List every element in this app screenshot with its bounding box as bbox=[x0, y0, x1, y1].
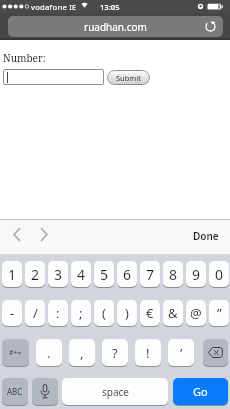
button[interactable]: ” bbox=[209, 300, 229, 326]
staticText: € bbox=[146, 304, 154, 322]
button[interactable]: Done bbox=[188, 225, 224, 247]
staticText: 8 bbox=[169, 265, 178, 284]
staticText: 6 bbox=[123, 265, 132, 284]
button[interactable]: - bbox=[2, 300, 22, 326]
button[interactable]: : bbox=[48, 300, 68, 326]
staticText: ruadhan.com bbox=[84, 20, 147, 34]
staticText: 0 bbox=[215, 265, 224, 284]
staticText: ) bbox=[125, 304, 129, 322]
button[interactable]: Go bbox=[173, 378, 228, 405]
staticText: & bbox=[168, 304, 178, 322]
button[interactable]: 6 bbox=[117, 261, 137, 287]
staticText: ? bbox=[112, 344, 118, 362]
staticText: 4 bbox=[77, 265, 86, 284]
button[interactable]: , bbox=[69, 339, 95, 366]
staticText: #+= bbox=[9, 348, 22, 358]
button[interactable]: ? bbox=[102, 339, 128, 366]
staticText: ( bbox=[102, 304, 106, 322]
staticText: 2 bbox=[31, 265, 40, 284]
button[interactable]: / bbox=[25, 300, 45, 326]
button[interactable] bbox=[13, 228, 21, 241]
button[interactable]: ABC bbox=[2, 378, 28, 405]
staticText: @ bbox=[190, 304, 202, 322]
button[interactable]: € bbox=[140, 300, 160, 326]
button[interactable]: @ bbox=[186, 300, 206, 326]
staticText: space bbox=[102, 385, 129, 399]
button[interactable]: 9 bbox=[186, 261, 206, 287]
button[interactable]: 1 bbox=[2, 261, 22, 287]
button[interactable]: 4 bbox=[71, 261, 91, 287]
staticText: , bbox=[80, 344, 84, 362]
button[interactable]: 2 bbox=[25, 261, 45, 287]
staticText: vodafone IE bbox=[31, 2, 77, 12]
button[interactable]: #+= bbox=[2, 339, 29, 366]
button[interactable]: 8 bbox=[163, 261, 183, 287]
staticText: 5 bbox=[100, 265, 109, 284]
button[interactable]: 3 bbox=[48, 261, 68, 287]
staticText: : bbox=[56, 304, 60, 322]
button[interactable] bbox=[203, 339, 228, 366]
button[interactable]: . bbox=[36, 339, 62, 366]
button[interactable]: ; bbox=[71, 300, 91, 326]
button[interactable]: 5 bbox=[94, 261, 114, 287]
staticText: - bbox=[10, 304, 15, 322]
staticText: ’ bbox=[180, 344, 183, 362]
staticText: Done bbox=[193, 229, 219, 243]
button[interactable]: ruadhan.com bbox=[8, 16, 223, 37]
staticText: Number: bbox=[3, 51, 46, 65]
button[interactable] bbox=[3, 69, 104, 85]
button[interactable]: ( bbox=[94, 300, 114, 326]
staticText: Submit bbox=[116, 73, 142, 83]
button[interactable] bbox=[205, 21, 216, 32]
staticText: 3 bbox=[54, 265, 63, 284]
staticText: . bbox=[47, 344, 51, 362]
staticText: ” bbox=[217, 304, 222, 322]
staticText: Go bbox=[193, 384, 208, 399]
button[interactable]: ) bbox=[117, 300, 137, 326]
staticText: 9 bbox=[192, 265, 201, 284]
button[interactable]: 0 bbox=[209, 261, 229, 287]
button[interactable]: ! bbox=[135, 339, 161, 366]
button[interactable] bbox=[32, 378, 58, 405]
button[interactable] bbox=[40, 228, 48, 241]
staticText: 13:05 bbox=[100, 2, 120, 12]
staticText: 1 bbox=[8, 265, 17, 284]
button[interactable]: & bbox=[163, 300, 183, 326]
staticText: ; bbox=[79, 304, 83, 322]
button[interactable]: Submit bbox=[107, 70, 150, 85]
button[interactable]: space bbox=[62, 378, 168, 405]
staticText: / bbox=[33, 304, 38, 322]
staticText: ! bbox=[146, 344, 150, 362]
button[interactable]: ’ bbox=[168, 339, 194, 366]
button[interactable]: 7 bbox=[140, 261, 160, 287]
staticText: 7 bbox=[146, 265, 155, 284]
staticText: ABC bbox=[7, 386, 23, 397]
